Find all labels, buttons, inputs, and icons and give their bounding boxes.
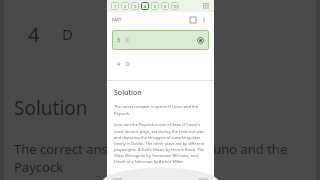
staticText: D — [62, 24, 73, 44]
staticText: C — [126, 37, 130, 44]
button[interactable]: 2 — [121, 2, 129, 10]
staticText: Juno and the Paycock is one of Sean O'Ca… — [114, 122, 207, 164]
button[interactable]: 4 — [141, 2, 149, 10]
staticText: 2 — [124, 4, 127, 9]
button[interactable]: Next question — [198, 178, 209, 180]
staticText: The correct answer is option (C) Juno an… — [14, 140, 288, 158]
staticText: 3 — [134, 4, 137, 9]
staticText: Paycock — [14, 158, 64, 176]
staticText: 10 — [173, 4, 178, 9]
staticText: Solution — [14, 95, 88, 121]
button[interactable]: 6 — [161, 2, 169, 10]
button[interactable]: Bookmark — [187, 14, 198, 25]
staticText: The correct answer is option (C) Juno an… — [114, 104, 199, 116]
button[interactable]: Grid view — [201, 1, 211, 11]
button[interactable]: 3 — [112, 30, 209, 50]
staticText: Solution — [114, 88, 142, 98]
staticText: 5 — [154, 4, 157, 9]
staticText: 3 — [117, 37, 120, 44]
button[interactable]: 5 — [151, 2, 159, 10]
staticText: EASY — [112, 17, 122, 22]
button[interactable]: 1 — [111, 2, 119, 10]
button[interactable]: 4 — [112, 56, 209, 72]
button[interactable]: 10 — [171, 2, 179, 10]
staticText: 4 — [144, 4, 147, 9]
button[interactable]: Previous question — [112, 178, 123, 180]
staticText: 6 — [164, 4, 167, 9]
staticText: 4 — [117, 61, 120, 68]
button[interactable]: More options — [198, 14, 209, 25]
staticText: 4 — [28, 21, 40, 48]
staticText: D — [126, 61, 130, 68]
button[interactable]: 3 — [131, 2, 139, 10]
staticText: 1 — [114, 4, 117, 9]
